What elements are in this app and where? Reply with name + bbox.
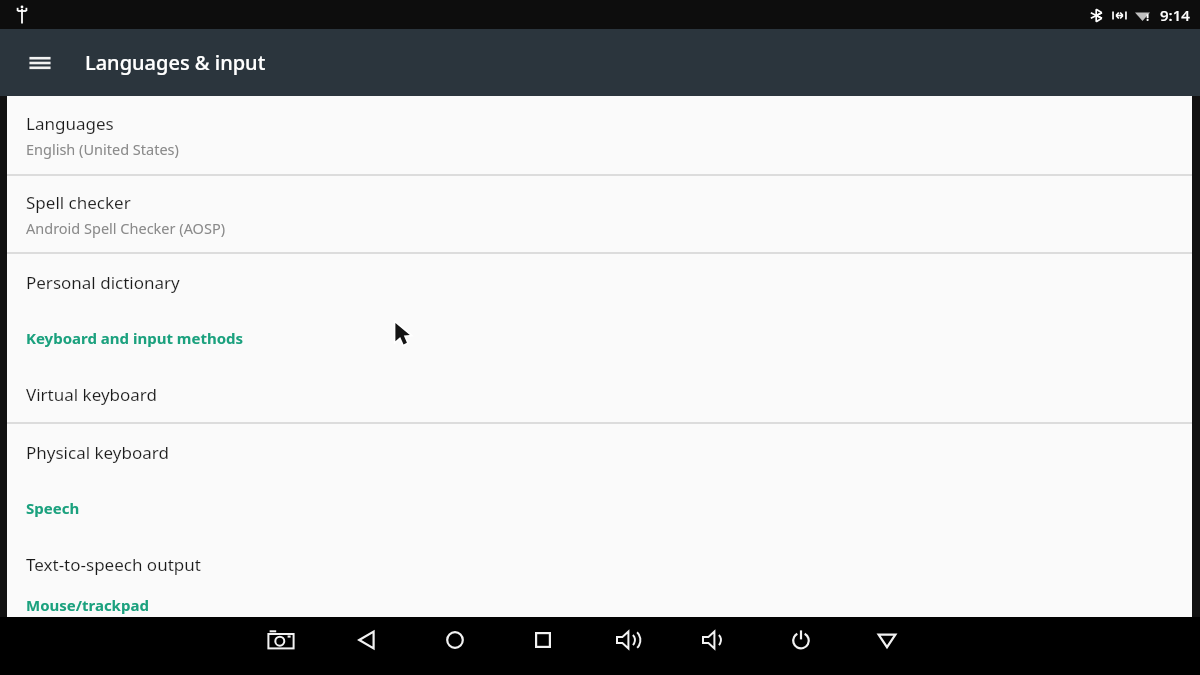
- button[interactable]: Open navigation menu: [18, 41, 62, 85]
- button[interactable]: Personal dictionary: [7, 254, 1192, 310]
- button[interactable]: Screenshot: [262, 617, 300, 663]
- staticText: Speech: [26, 498, 80, 518]
- button[interactable]: Text-to-speech output: [7, 536, 1192, 592]
- staticText: Android Spell Checker (AOSP): [26, 218, 226, 238]
- button[interactable]: Virtual keyboard: [7, 366, 1192, 422]
- staticText: Text-to-speech output: [26, 553, 201, 576]
- button[interactable]: Volume up: [610, 617, 648, 663]
- staticText: Languages & input: [85, 49, 266, 76]
- staticText: Virtual keyboard: [26, 383, 158, 406]
- button[interactable]: Back: [348, 617, 386, 663]
- button[interactable]: Physical keyboard: [7, 424, 1192, 480]
- staticText: Mouse/trackpad: [26, 595, 149, 615]
- button[interactable]: Spell checker: [7, 176, 1192, 252]
- button[interactable]: Hide navigation bar: [868, 617, 906, 663]
- staticText: Physical keyboard: [26, 441, 169, 464]
- staticText: 9:14: [1160, 5, 1190, 25]
- button[interactable]: Volume down: [696, 617, 734, 663]
- staticText: English (United States): [26, 139, 179, 159]
- staticText: Spell checker: [26, 191, 131, 214]
- button[interactable]: Languages: [7, 96, 1192, 174]
- staticText: Keyboard and input methods: [26, 328, 244, 348]
- staticText: Languages: [26, 112, 114, 135]
- button[interactable]: Power: [782, 617, 820, 663]
- button[interactable]: Home: [436, 617, 474, 663]
- button[interactable]: Recent apps: [524, 617, 562, 663]
- staticText: Personal dictionary: [26, 271, 180, 294]
